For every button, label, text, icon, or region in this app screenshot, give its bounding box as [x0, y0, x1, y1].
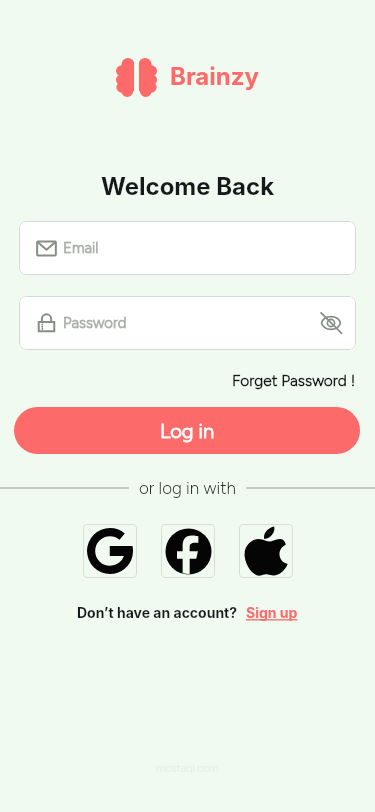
button[interactable]: Email [19, 221, 356, 275]
staticText: Don’t have an account? [77, 604, 238, 621]
staticText: Welcome Back [101, 172, 275, 201]
staticText: Password [63, 314, 127, 332]
button[interactable]: Forget Password ! [232, 371, 356, 390]
button[interactable]: Password [19, 296, 356, 350]
button[interactable]: Log in [14, 407, 360, 454]
button[interactable]: Sign in with Apple [239, 524, 293, 578]
button[interactable]: Sign in with Google [83, 524, 137, 578]
staticText: Brainzy [170, 62, 259, 91]
staticText: Email [63, 239, 99, 257]
staticText: mostaql.com [156, 762, 219, 775]
staticText: Sign up [246, 604, 298, 621]
staticText: Forget Password ! [232, 371, 356, 390]
staticText: or log in with [139, 478, 236, 498]
button[interactable]: Sign in with Facebook [161, 524, 215, 578]
button[interactable]: Show password [319, 311, 343, 335]
staticText: Log in [160, 419, 214, 443]
button[interactable]: Sign up [246, 604, 298, 621]
